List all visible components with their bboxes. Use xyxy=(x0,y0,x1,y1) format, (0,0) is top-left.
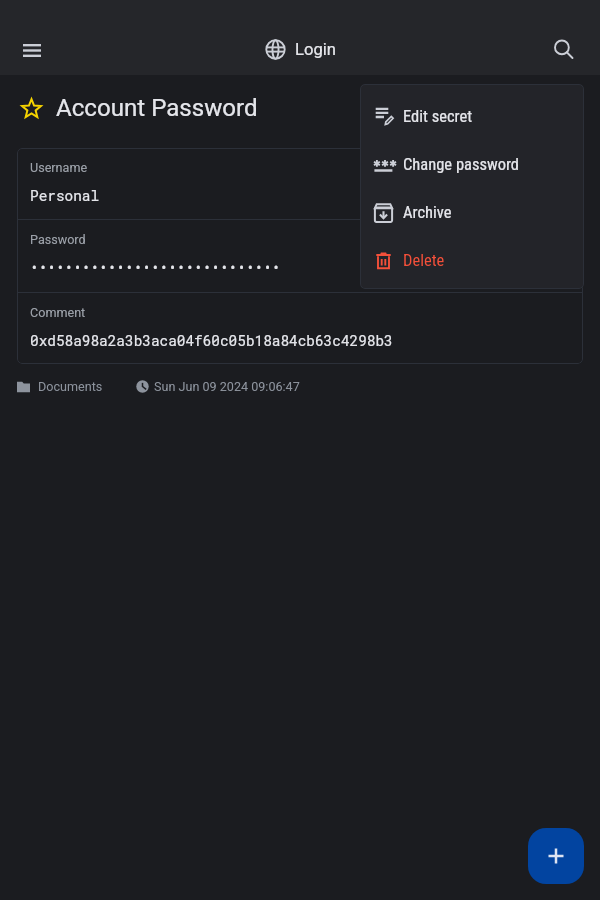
staticText: Account Password xyxy=(56,94,258,122)
staticText: ••••••••••••••••••••••••••••• xyxy=(30,258,281,277)
button[interactable]: Open navigation menu xyxy=(8,26,56,74)
staticText: Password xyxy=(30,232,86,247)
button[interactable]: Archive xyxy=(360,188,584,236)
button[interactable]: Search xyxy=(542,28,586,72)
staticText: 0xd58a98a2a3b3aca04f60c05b18a84cb63c4298… xyxy=(30,331,393,350)
staticText: Personal xyxy=(30,186,100,205)
button[interactable]: Edit secret xyxy=(360,92,584,140)
button[interactable]: Add xyxy=(528,828,584,884)
staticText: Archive xyxy=(403,203,452,222)
button[interactable]: Username xyxy=(17,148,583,219)
button[interactable]: Login xyxy=(265,39,336,60)
staticText: Username xyxy=(30,160,88,175)
button[interactable]: Comment xyxy=(17,293,583,364)
staticText: Edit secret xyxy=(403,107,473,126)
staticText: Change password xyxy=(403,155,520,174)
button[interactable]: Documents xyxy=(17,379,103,394)
staticText: Delete xyxy=(403,251,445,270)
button[interactable]: Password xyxy=(17,220,583,292)
button[interactable]: Change password xyxy=(360,140,584,188)
staticText: Comment xyxy=(30,305,86,320)
staticText: Sun Jun 09 2024 09:06:47 xyxy=(154,379,300,394)
button[interactable]: Delete xyxy=(360,236,584,284)
staticText: Documents xyxy=(38,379,103,394)
staticText: Login xyxy=(295,40,336,59)
